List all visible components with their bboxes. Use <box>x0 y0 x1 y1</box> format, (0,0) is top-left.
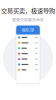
staticText: 我的订单 <box>22 28 34 32</box>
staticText: 交易买卖，极速导购 <box>1 6 55 15</box>
staticText: 便捷交易服务体验 <box>12 17 44 22</box>
